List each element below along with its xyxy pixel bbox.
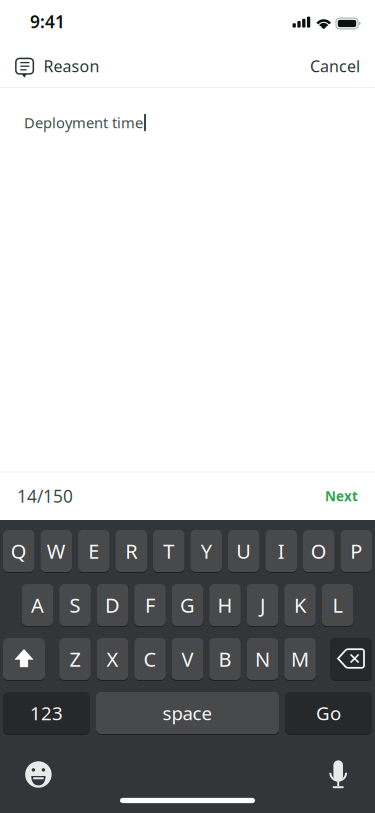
button[interactable]: B [209, 637, 241, 680]
staticText: Next [325, 487, 358, 505]
button[interactable]: T [153, 529, 184, 572]
staticText: C [143, 646, 156, 672]
button[interactable]: Next [17, 487, 358, 505]
staticText: X [106, 646, 118, 672]
staticText: M [291, 646, 309, 672]
staticText: 123 [30, 701, 63, 725]
button[interactable]: P [340, 529, 372, 572]
button[interactable]: N [247, 637, 278, 680]
staticText: E [88, 538, 99, 564]
button[interactable]: Q [3, 529, 34, 572]
button[interactable]: F [134, 583, 166, 626]
button[interactable]: V [172, 637, 203, 680]
button[interactable]: H [209, 583, 241, 626]
staticText: T [163, 538, 174, 564]
staticText: N [255, 646, 270, 672]
button[interactable]: Cancel [15, 55, 360, 77]
button[interactable]: U [228, 529, 259, 572]
staticText: V [181, 646, 193, 672]
button[interactable] [330, 760, 347, 787]
button[interactable]: L [322, 583, 353, 626]
button[interactable]: E [78, 529, 109, 572]
button[interactable]: A [22, 583, 53, 626]
button[interactable] [330, 637, 372, 680]
button[interactable]: G [172, 583, 203, 626]
staticText: D [105, 592, 120, 618]
button[interactable]: Go [285, 691, 372, 734]
button[interactable]: 123 [3, 691, 90, 734]
button[interactable]: O [303, 529, 334, 572]
staticText: 14/150 [17, 484, 73, 507]
staticText: K [294, 592, 306, 618]
staticText: I [278, 538, 285, 564]
staticText: space [162, 701, 212, 725]
staticText: Reason [43, 55, 99, 77]
button[interactable]: space [96, 691, 279, 734]
staticText: P [350, 538, 362, 564]
button[interactable]: D [97, 583, 128, 626]
button[interactable]: C [134, 637, 166, 680]
button[interactable]: R [115, 529, 147, 572]
staticText: Go [316, 701, 341, 725]
staticText: H [217, 592, 232, 618]
staticText: Deployment time [24, 113, 143, 132]
button[interactable]: X [97, 637, 128, 680]
button[interactable]: J [247, 583, 278, 626]
button[interactable]: K [284, 583, 316, 626]
staticText: F [145, 592, 155, 618]
staticText: 9:41 [30, 10, 65, 33]
button[interactable] [3, 637, 45, 680]
staticText: S [69, 592, 80, 618]
staticText: J [260, 592, 265, 618]
staticText: Z [69, 646, 80, 672]
staticText: Y [201, 538, 212, 564]
staticText: U [236, 538, 251, 564]
staticText: G [180, 592, 195, 618]
staticText: L [332, 592, 342, 618]
button[interactable]: Z [59, 637, 91, 680]
button[interactable] [25, 761, 52, 788]
staticText: R [125, 538, 137, 564]
button[interactable]: W [40, 529, 72, 572]
button[interactable]: Y [190, 529, 222, 572]
staticText: Cancel [310, 55, 360, 77]
button[interactable]: I [265, 529, 297, 572]
staticText: Q [11, 538, 27, 564]
staticText: W [47, 538, 66, 564]
staticText: O [311, 538, 327, 564]
staticText: B [218, 646, 231, 672]
button[interactable]: S [59, 583, 91, 626]
staticText: A [31, 592, 44, 618]
button[interactable]: M [284, 637, 316, 680]
